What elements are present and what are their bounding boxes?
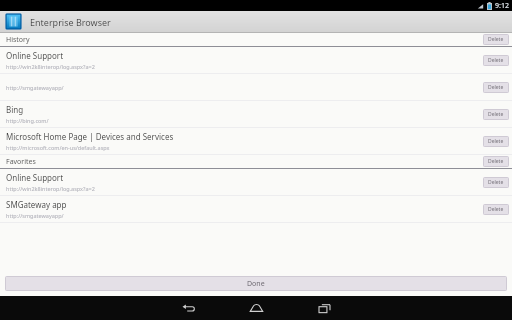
button[interactable]: Delete (483, 109, 509, 120)
staticText: http://win2k8interop/log.aspx?a=2 (6, 185, 95, 192)
button[interactable]: Delete (483, 177, 509, 188)
staticText: Delete (488, 111, 504, 118)
staticText: http://win2k8interop/log.aspx?a=2 (6, 63, 95, 70)
button[interactable]: Delete (483, 156, 509, 167)
staticText: Delete (488, 36, 504, 43)
staticText: Bing (6, 104, 24, 115)
button[interactable]: Recent apps (312, 296, 336, 320)
staticText: Delete (488, 138, 504, 145)
staticText: Favorites (6, 157, 36, 167)
staticText: http://smgatewayapp/ (6, 212, 64, 219)
staticText: Online Support (6, 172, 64, 183)
staticText: SMGateway app (6, 199, 67, 210)
button[interactable]: Delete (483, 136, 509, 147)
button[interactable]: Delete (483, 204, 509, 215)
staticText: Delete (488, 206, 504, 213)
button[interactable]: Microsoft Home Page | Devices and Servic… (0, 128, 512, 155)
staticText: Delete (488, 84, 504, 91)
staticText: Enterprise Browser (30, 16, 111, 28)
staticText: Delete (488, 179, 504, 186)
staticText: 9:12 (495, 1, 509, 11)
button[interactable]: Delete (483, 34, 509, 45)
button[interactable]: Online Support (0, 169, 512, 196)
button[interactable]: Done (5, 276, 507, 291)
staticText: http://microsoft.com/en-us/default.aspx (6, 144, 110, 151)
button[interactable]: Bing (0, 101, 512, 128)
button[interactable]: Delete (483, 55, 509, 66)
staticText: Delete (488, 158, 504, 165)
staticText: Microsoft Home Page | Devices and Servic… (6, 131, 174, 142)
staticText: http://smgatewayapp/ (6, 84, 64, 91)
button[interactable]: Home (244, 296, 268, 320)
staticText: http://bing.com/ (6, 117, 49, 124)
button[interactable]: Back (176, 296, 200, 320)
button[interactable]: SMGateway app (0, 196, 512, 223)
staticText: History (6, 35, 30, 45)
staticText: Delete (488, 57, 504, 64)
staticText: Online Support (6, 50, 64, 61)
button[interactable]: http://smgatewayapp/ (0, 74, 512, 101)
button[interactable]: Delete (483, 82, 509, 93)
button[interactable]: Online Support (0, 47, 512, 74)
staticText: Done (247, 279, 265, 289)
